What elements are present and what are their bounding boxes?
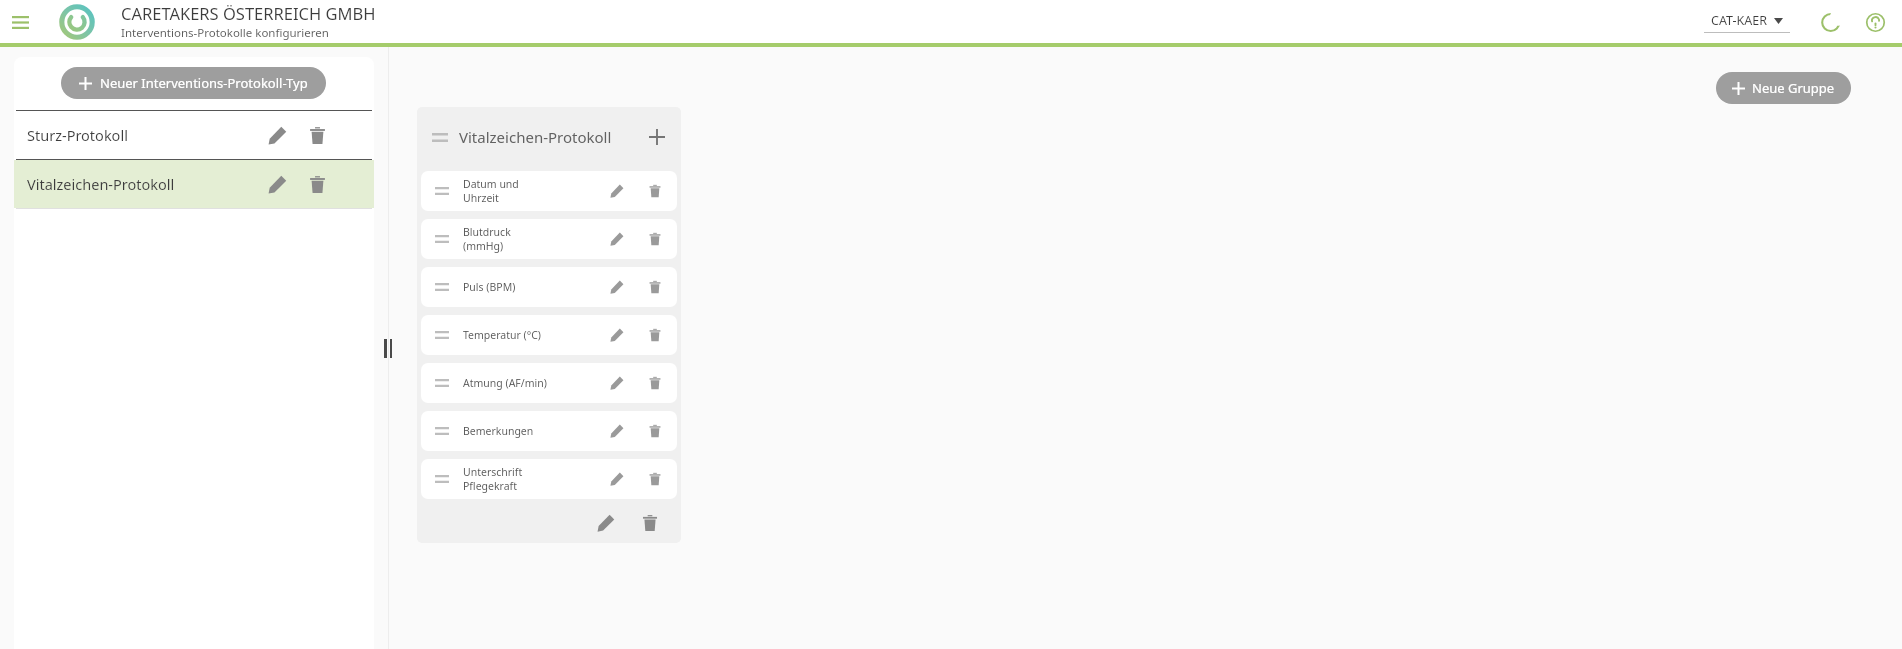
staticText: Vitalzeichen-Protokoll — [459, 127, 643, 147]
button[interactable]: Help — [1862, 9, 1888, 35]
staticText: (mmHg) — [463, 239, 504, 253]
button[interactable]: Unterschrift — [421, 459, 677, 499]
button[interactable]: Vitalzeichen-Protokoll — [14, 160, 374, 208]
button[interactable]: Delete group — [635, 508, 665, 538]
staticText: Uhrzeit — [463, 191, 499, 205]
button[interactable]: Edit field — [605, 371, 629, 395]
button[interactable]: Delete field — [643, 275, 667, 299]
staticText: Interventions-Protokolle konfigurieren — [121, 25, 329, 41]
button[interactable]: Neue Gruppe — [1716, 72, 1851, 104]
staticText: Atmung (AF/min) — [463, 376, 547, 390]
staticText: Neuer Interventions-Protokoll-Typ — [100, 74, 308, 92]
button[interactable]: Resize panel — [380, 335, 396, 362]
staticText: Neue Gruppe — [1752, 79, 1835, 97]
staticText: Puls (BPM) — [463, 280, 516, 294]
staticText: Pflegekraft — [463, 479, 518, 493]
staticText: CARETAKERS ÖSTERREICH GMBH — [121, 2, 376, 24]
button[interactable]: Edit field — [605, 467, 629, 491]
button[interactable]: Edit field — [605, 227, 629, 251]
staticText: Vitalzeichen-Protokoll — [27, 174, 262, 194]
button[interactable]: Menu — [5, 7, 35, 37]
button[interactable]: Delete field — [643, 179, 667, 203]
button[interactable]: CAT-KAER — [1704, 12, 1790, 33]
button[interactable]: Delete field — [643, 371, 667, 395]
button[interactable]: Edit — [262, 169, 292, 199]
staticText: Blutdruck — [463, 225, 511, 239]
button[interactable]: Blutdruck — [421, 219, 677, 259]
button[interactable]: Delete field — [643, 419, 667, 443]
button[interactable]: Dark mode — [1818, 9, 1844, 35]
button[interactable]: Puls (BPM) — [421, 267, 677, 307]
staticText: Datum und — [463, 177, 519, 191]
button[interactable]: Datum und — [421, 171, 677, 211]
button[interactable]: Bemerkungen — [421, 411, 677, 451]
button[interactable]: Delete field — [643, 323, 667, 347]
button[interactable]: Neuer Interventions-Protokoll-Typ — [61, 67, 326, 99]
button[interactable]: Edit field — [605, 275, 629, 299]
button[interactable]: Edit group — [591, 508, 621, 538]
button[interactable]: Temperatur (°C) — [421, 315, 677, 355]
button[interactable]: Delete — [302, 169, 332, 199]
button[interactable]: Add field — [643, 123, 671, 151]
button[interactable]: Atmung (AF/min) — [421, 363, 677, 403]
button[interactable]: Edit — [262, 120, 292, 150]
staticText: CAT-KAER — [1711, 12, 1767, 29]
staticText: Sturz-Protokoll — [27, 125, 262, 145]
button[interactable]: Delete field — [643, 467, 667, 491]
staticText: Bemerkungen — [463, 424, 534, 438]
button[interactable]: Edit field — [605, 419, 629, 443]
button[interactable]: Edit field — [605, 179, 629, 203]
button[interactable]: Sturz-Protokoll — [14, 111, 374, 159]
button[interactable]: Edit field — [605, 323, 629, 347]
button[interactable]: Delete — [302, 120, 332, 150]
button[interactable]: Reorder group — [427, 124, 453, 150]
staticText: Temperatur (°C) — [463, 328, 542, 342]
staticText: Unterschrift — [463, 465, 523, 479]
button[interactable]: Delete field — [643, 227, 667, 251]
